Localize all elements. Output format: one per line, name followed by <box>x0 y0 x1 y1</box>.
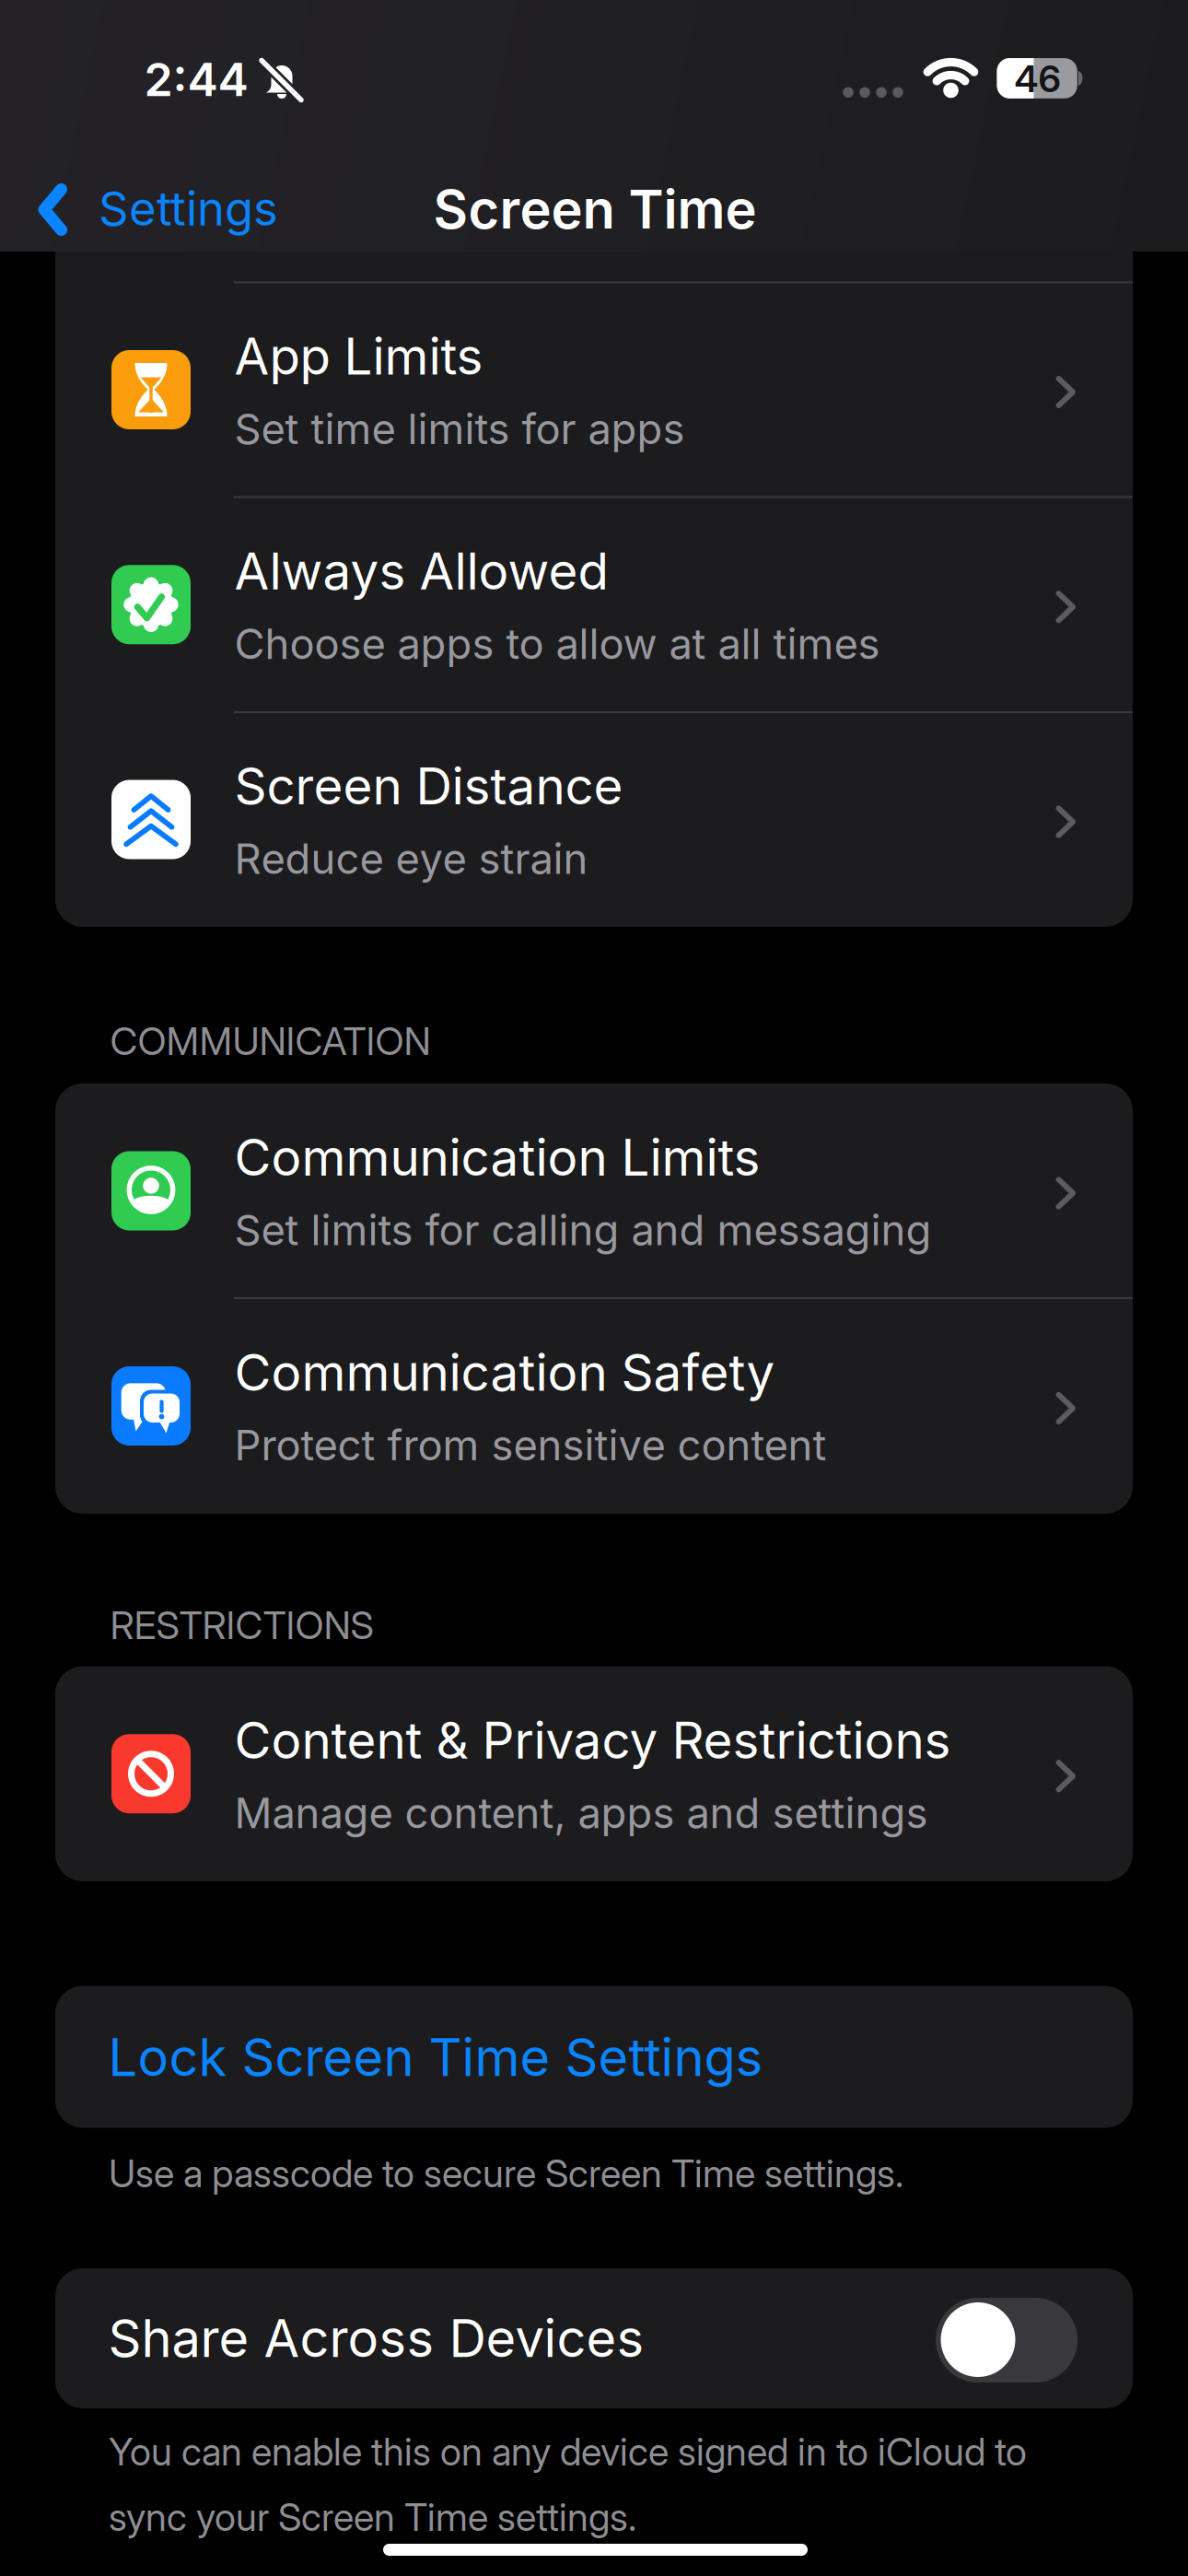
staticText: Set limits for calling and messaging <box>234 1205 932 1255</box>
button[interactable]: Content & Privacy Restrictions <box>55 1666 1133 1881</box>
staticText: Use a passcode to secure Screen Time set… <box>109 2150 903 2196</box>
staticText: RESTRICTIONS <box>110 1602 373 1648</box>
button[interactable]: Screen Distance <box>55 712 1133 927</box>
staticText: Always Allowed <box>234 541 608 601</box>
staticText: COMMUNICATION <box>110 1018 431 1064</box>
staticText: Settings <box>99 180 278 237</box>
staticText: Lock Screen Time Settings <box>108 2026 763 2089</box>
button[interactable]: Always Allowed <box>55 497 1133 712</box>
button[interactable]: Communication Limits <box>55 1083 1133 1298</box>
staticText: Share Across Devices <box>108 2307 644 2370</box>
button[interactable]: Lock Screen Time Settings <box>55 1986 1133 2128</box>
staticText: You can enable this on any device signed… <box>109 2429 1027 2475</box>
staticText: Communication Limits <box>234 1127 760 1188</box>
staticText: Set time limits for apps <box>234 404 685 454</box>
staticText: App Limits <box>234 326 483 386</box>
staticText: sync your Screen Time settings. <box>109 2494 636 2540</box>
staticText: 2:44 <box>144 51 248 107</box>
staticText: 46 <box>1014 56 1060 101</box>
staticText: Protect from sensitive content <box>234 1420 827 1470</box>
staticText: Screen Time <box>433 177 757 241</box>
button[interactable]: Communication Safety <box>55 1298 1133 1514</box>
staticText: Communication Safety <box>234 1342 775 1403</box>
staticText: Screen Distance <box>234 755 623 816</box>
staticText: Reduce eye strain <box>234 833 588 884</box>
button[interactable]: Share Across Devices <box>55 2268 1133 2408</box>
staticText: Choose apps to allow at all times <box>234 618 880 669</box>
staticText: Manage content, apps and settings <box>234 1788 928 1838</box>
staticText: Content & Privacy Restrictions <box>234 1710 951 1771</box>
button[interactable]: Back to Settings <box>9 147 378 267</box>
button[interactable]: App Limits <box>55 282 1133 497</box>
